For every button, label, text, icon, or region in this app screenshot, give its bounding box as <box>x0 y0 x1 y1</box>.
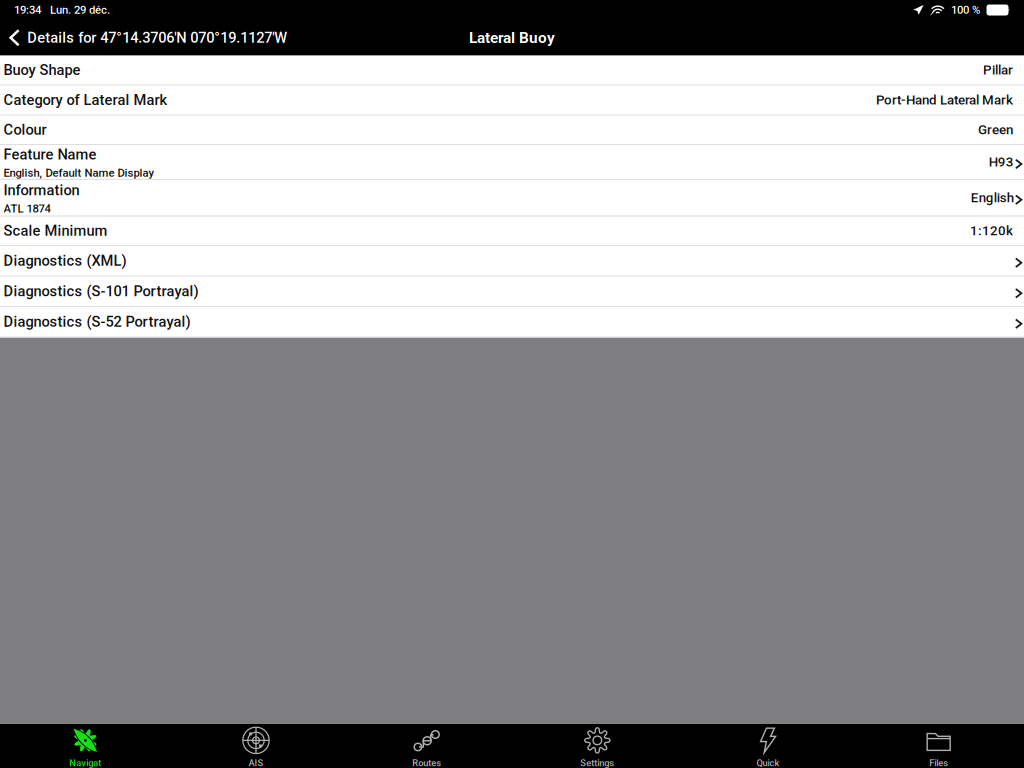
staticText: Lateral Buoy <box>469 29 555 47</box>
staticText: Details for 47°14.3706′N 070°19.1127′W <box>27 29 287 46</box>
staticText: Diagnostics (XML) <box>3 252 126 269</box>
button[interactable]: Routes <box>341 724 512 768</box>
button[interactable]: Buoy Shape <box>0 55 1024 85</box>
staticText: Colour <box>3 121 46 138</box>
button[interactable]: Feature Name <box>0 145 1024 180</box>
staticText: 100 % <box>951 3 980 17</box>
staticText: Settings <box>580 758 614 768</box>
staticText: Information <box>3 182 79 199</box>
staticText: Pillar <box>983 62 1013 78</box>
staticText: Lun. 29 déc. <box>50 3 110 17</box>
button[interactable]: Information <box>0 180 1024 216</box>
button[interactable]: Details for 47°14.3706′N 070°19.1127′W <box>0 29 287 46</box>
staticText: Buoy Shape <box>3 61 80 79</box>
button[interactable]: Colour <box>0 115 1024 145</box>
staticText: Diagnostics (S-52 Portrayal) <box>3 313 190 330</box>
staticText: Routes <box>412 758 441 768</box>
button[interactable]: Files <box>853 724 1024 768</box>
staticText: H93 <box>989 154 1014 170</box>
staticText: Scale Minimum <box>3 222 107 239</box>
staticText: English, Default Name Display <box>3 166 154 179</box>
staticText: 19:34 <box>14 3 41 17</box>
staticText: Navigat <box>69 758 101 768</box>
staticText: Port-Hand Lateral Mark <box>876 92 1013 108</box>
button[interactable]: Scale Minimum <box>0 216 1024 246</box>
staticText: Files <box>929 758 948 768</box>
staticText: AIS <box>248 758 263 768</box>
staticText: ATL 1874 <box>3 202 50 215</box>
button[interactable]: Quick <box>683 724 853 768</box>
button[interactable]: Navigat <box>0 724 171 768</box>
staticText: Diagnostics (S-101 Portrayal) <box>3 283 198 300</box>
button[interactable]: AIS <box>171 724 341 768</box>
button[interactable]: Diagnostics (XML) <box>0 246 1024 276</box>
staticText: Feature Name <box>3 146 96 163</box>
staticText: Quick <box>756 758 779 768</box>
staticText: Category of Lateral Mark <box>3 91 167 109</box>
button[interactable]: Diagnostics (S-52 Portrayal) <box>0 307 1024 337</box>
button[interactable]: Category of Lateral Mark <box>0 85 1024 115</box>
button[interactable]: Diagnostics (S-101 Portrayal) <box>0 276 1024 307</box>
button[interactable]: Settings <box>512 724 683 768</box>
staticText: Green <box>978 122 1013 137</box>
staticText: English <box>971 190 1014 205</box>
staticText: 1:120k <box>970 223 1013 238</box>
